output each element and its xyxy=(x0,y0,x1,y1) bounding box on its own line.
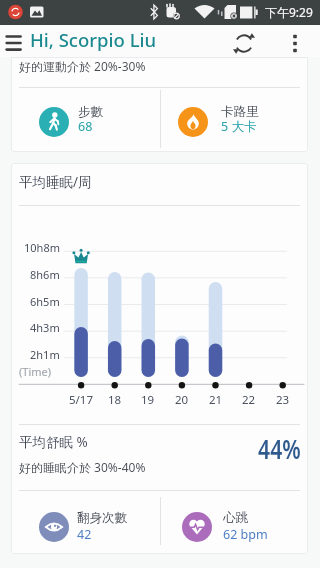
staticText: 好的運動介於 20%-30% xyxy=(19,58,146,74)
staticText: 62 bpm xyxy=(223,526,268,543)
staticText: 23 xyxy=(276,392,290,408)
staticText: 44% xyxy=(258,430,301,467)
button[interactable]: 步數 xyxy=(11,88,160,152)
button[interactable] xyxy=(283,29,307,55)
staticText: 平均睡眠/周 xyxy=(19,173,92,191)
staticText: 6h5m xyxy=(30,294,60,309)
staticText: 21 xyxy=(209,392,223,408)
staticText: 5 大卡 xyxy=(221,118,257,135)
staticText: 42 xyxy=(77,526,92,543)
staticText: (Time) xyxy=(19,364,52,379)
staticText: 2h1m xyxy=(30,347,60,362)
staticText: 翻身次數 xyxy=(77,510,127,526)
staticText: 4h3m xyxy=(30,320,60,335)
staticText: 卡路里 xyxy=(221,104,259,120)
staticText: 20 xyxy=(175,392,189,408)
staticText: 5/17 xyxy=(69,392,94,408)
button[interactable]: 翻身次數 xyxy=(11,492,160,552)
staticText: 19 xyxy=(141,392,155,408)
button[interactable] xyxy=(0,27,28,55)
staticText: 8h6m xyxy=(30,267,60,282)
staticText: 18 xyxy=(108,392,122,408)
staticText: Hi, Scorpio Liu xyxy=(30,27,157,52)
button[interactable]: 卡路里 xyxy=(161,88,308,152)
staticText: 下午9:29 xyxy=(265,4,313,20)
staticText: 68 xyxy=(78,118,93,135)
button[interactable] xyxy=(230,29,258,55)
staticText: 平均舒眠 % xyxy=(19,433,88,451)
button[interactable]: 心跳 xyxy=(161,492,308,552)
staticText: 步數 xyxy=(78,104,103,120)
staticText: 10h8m xyxy=(24,240,60,255)
staticText: 好的睡眠介於 30%-40% xyxy=(19,459,146,475)
staticText: 心跳 xyxy=(223,510,248,526)
staticText: 22 xyxy=(242,392,256,408)
